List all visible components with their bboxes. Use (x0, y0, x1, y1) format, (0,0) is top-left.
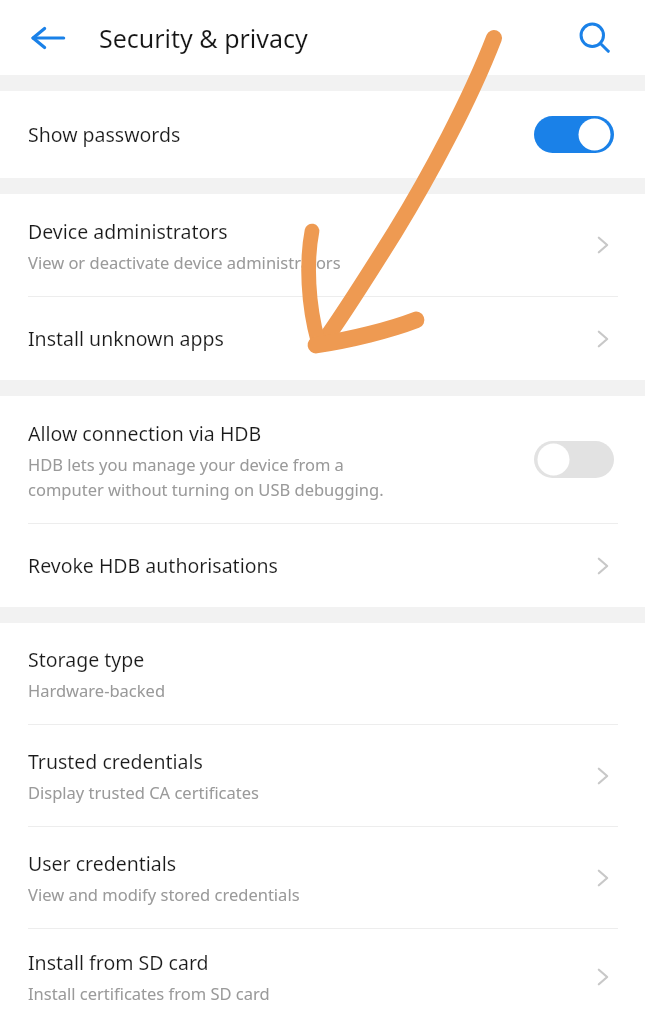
staticText: Device administrators (28, 218, 228, 245)
button[interactable]: Allow connection via HDB (0, 396, 645, 523)
staticText: User credentials (28, 850, 177, 877)
button[interactable]: Device administrators (0, 194, 645, 296)
staticText: Trusted credentials (28, 748, 203, 775)
staticText: Display trusted CA certificates (28, 781, 259, 803)
button[interactable]: Revoke HDB authorisations (0, 524, 645, 607)
staticText: Security & privacy (99, 21, 308, 55)
staticText: computer without turning on USB debuggin… (28, 478, 384, 500)
staticText: View and modify stored credentials (28, 883, 300, 905)
button[interactable]: Search (567, 10, 623, 66)
staticText: Storage type (28, 646, 145, 673)
staticText: Show passwords (28, 121, 181, 148)
staticText: View or deactivate device administrators (28, 251, 341, 273)
staticText: Install from SD card (28, 949, 209, 976)
button[interactable]: Toggle on (534, 116, 614, 153)
staticText: Install unknown apps (28, 325, 224, 352)
button[interactable]: Trusted credentials (0, 725, 645, 826)
button[interactable]: Install from SD card (0, 929, 645, 1024)
button[interactable]: Install unknown apps (0, 297, 645, 380)
button[interactable]: Toggle off (534, 441, 614, 478)
button[interactable]: Back (18, 8, 78, 68)
staticText: Revoke HDB authorisations (28, 552, 278, 579)
staticText: HDB lets you manage your device from a (28, 453, 344, 475)
staticText: Allow connection via HDB (28, 420, 262, 447)
button[interactable]: User credentials (0, 827, 645, 928)
button[interactable]: Storage type (0, 623, 645, 724)
staticText: Hardware-backed (28, 679, 166, 701)
button[interactable]: Show passwords (0, 91, 645, 178)
staticText: Install certificates from SD card (28, 982, 270, 1004)
